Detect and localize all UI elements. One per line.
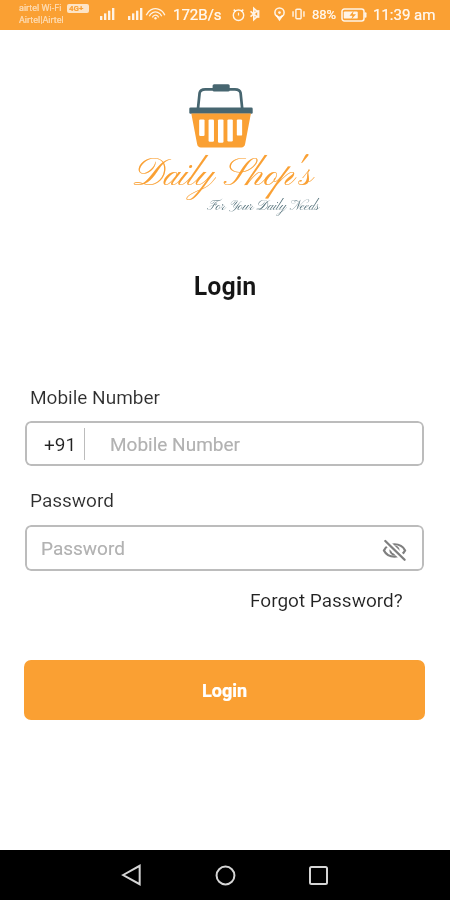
staticText: Mobile Number [110,433,240,455]
button[interactable]: Login [24,660,425,720]
staticText: Forgot Password? [250,589,403,611]
staticText: Mobile Number [30,386,160,408]
button[interactable]: Password [25,525,424,571]
staticText: Password [30,489,114,511]
staticText: 172B/s [173,6,222,24]
staticText: 4G+ [69,4,84,13]
button[interactable]: Back [84,850,178,900]
staticText: Password [41,537,378,559]
staticText: 11:39 am [373,6,436,24]
button[interactable]: Home [178,850,272,900]
staticText: For Your Daily Needs [38,198,450,215]
staticText: Login [0,272,450,301]
staticText: Login [202,680,248,701]
staticText: Daily Shop's [0,152,448,199]
button[interactable]: Forgot Password? [244,586,409,614]
button[interactable]: Show password [378,525,424,571]
button[interactable]: +91 [25,421,424,466]
staticText: 88% [312,7,337,22]
button[interactable]: Recents [271,850,365,900]
staticText: Airtel|Airtel [19,15,64,26]
staticText: airtel Wi-Fi [19,3,62,14]
staticText: +91 [44,433,77,455]
